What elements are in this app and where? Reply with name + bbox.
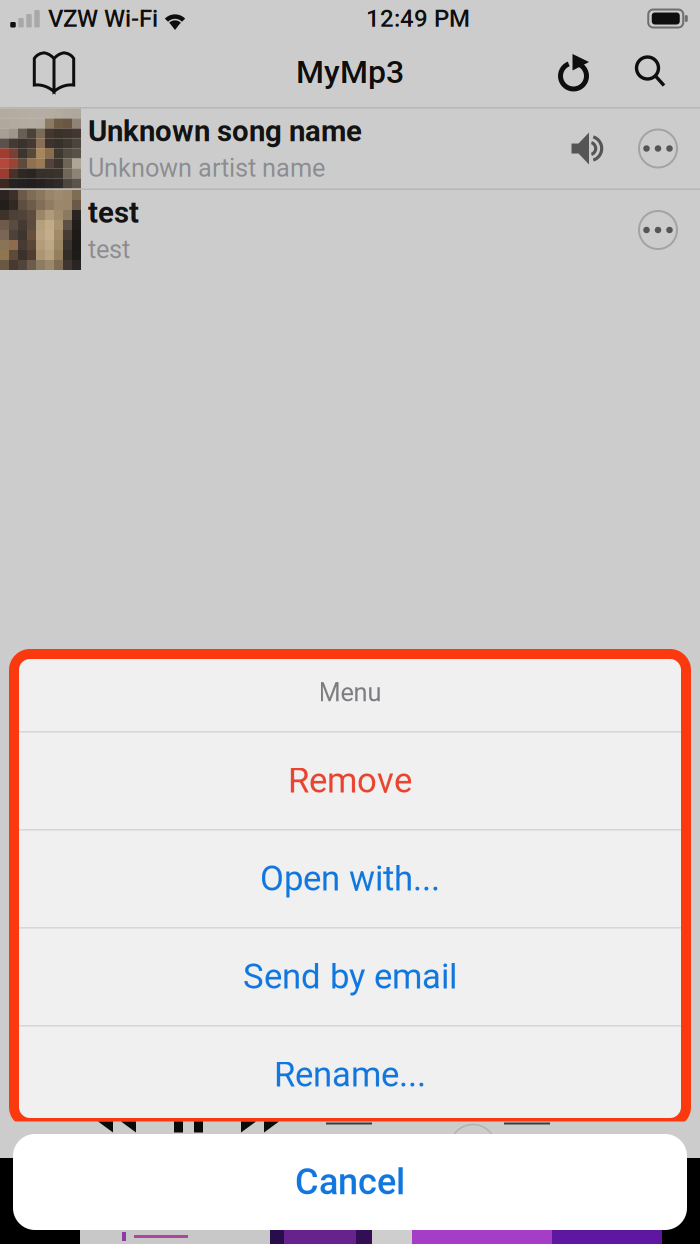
staticText: Unknown song name	[88, 114, 362, 148]
staticText: test	[88, 195, 139, 230]
staticText: MyMp3	[296, 53, 404, 91]
staticText: Remove	[288, 760, 412, 801]
button[interactable]: Rename...	[19, 1026, 681, 1123]
button[interactable]: Cancel	[0, 1134, 700, 1230]
button[interactable]: test	[0, 190, 700, 270]
staticText: Cancel	[295, 1161, 405, 1203]
button[interactable]: Menu	[19, 654, 681, 731]
button[interactable]: Search	[618, 37, 682, 107]
staticText: Open with...	[260, 858, 440, 899]
button[interactable]: Open with...	[19, 830, 681, 927]
staticText: test	[88, 235, 130, 264]
staticText: VZW Wi-Fi	[48, 4, 158, 32]
staticText: Unknown artist name	[88, 153, 325, 183]
staticText: Send by email	[243, 956, 457, 997]
staticText: Menu	[318, 678, 381, 707]
button[interactable]: Refresh	[542, 37, 606, 107]
button[interactable]: Remove	[19, 732, 681, 829]
button[interactable]: Unknown song name	[0, 108, 700, 188]
button[interactable]: Send by email	[19, 928, 681, 1025]
staticText: Rename...	[274, 1054, 426, 1095]
button[interactable]: Library	[16, 37, 92, 107]
staticText: 12:49 PM	[366, 4, 470, 32]
